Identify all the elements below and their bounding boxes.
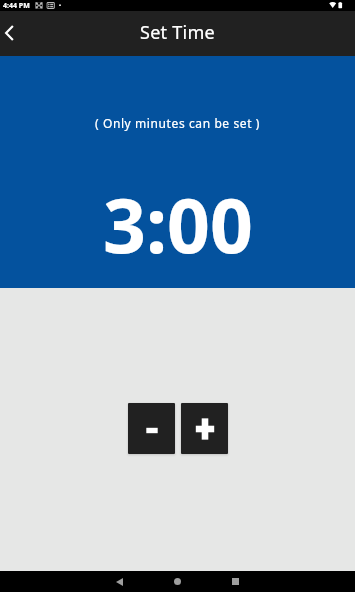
button[interactable]: Recents (206, 571, 265, 592)
staticText: 4:44 PM (3, 1, 30, 11)
staticText: 3:00 (103, 173, 253, 275)
button[interactable]: Home (148, 571, 207, 592)
button[interactable]: Back (90, 571, 149, 592)
staticText: ( Only minutes can be set ) (95, 115, 261, 131)
button[interactable]: Decrease (128, 403, 175, 454)
button[interactable]: Back (0, 11, 34, 56)
staticText: Set Time (140, 20, 215, 45)
button[interactable]: Increase (181, 403, 228, 454)
